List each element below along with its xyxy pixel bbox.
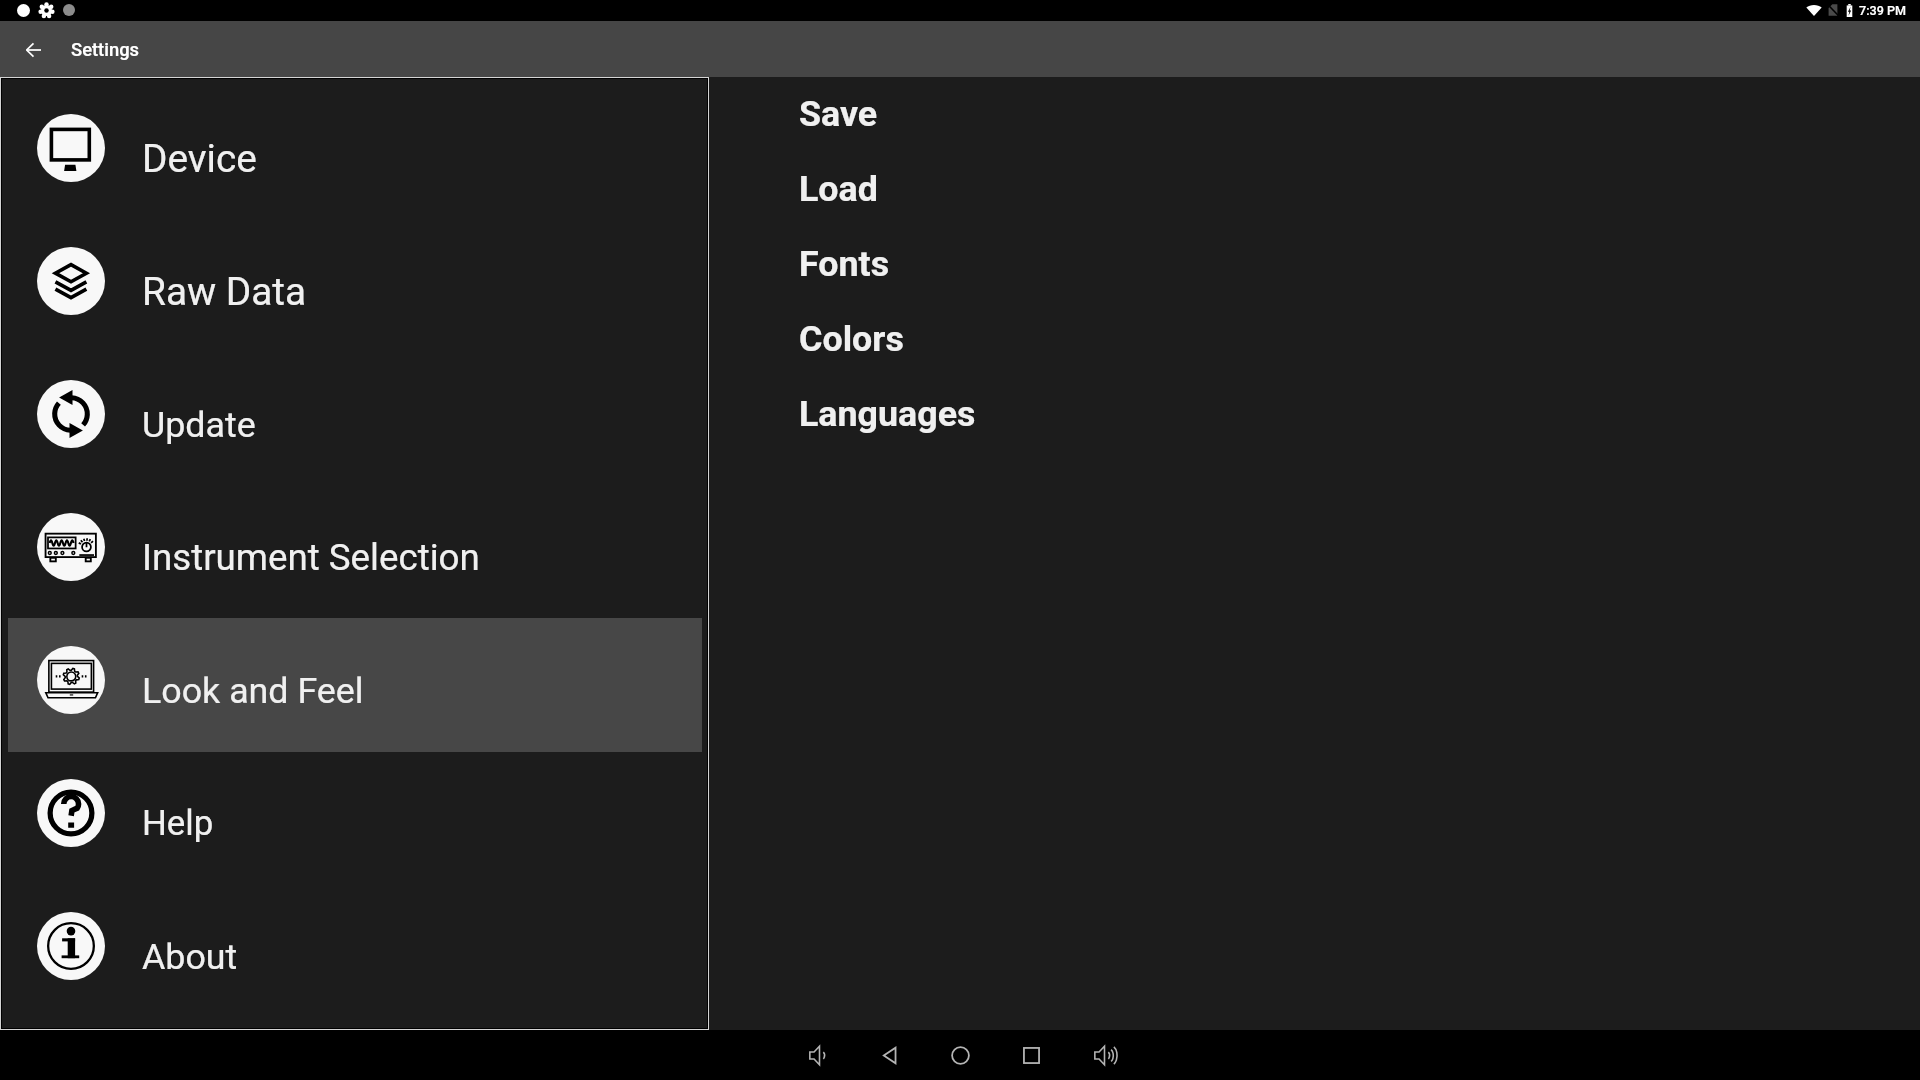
button[interactable] [800,385,1030,441]
button[interactable]: Recents [1008,1032,1054,1078]
staticText: Update [142,404,256,446]
button[interactable]: Volume up [1081,1032,1127,1078]
staticText: Look and Feel [142,670,364,712]
button[interactable]: Back [13,30,53,70]
button[interactable] [8,485,702,619]
staticText: Save [799,93,878,135]
button[interactable] [800,235,1030,291]
button[interactable]: Home [937,1032,983,1078]
staticText: Load [799,168,878,210]
button[interactable] [8,352,702,486]
staticText: Settings [71,39,140,61]
button[interactable] [8,86,702,220]
button[interactable]: Volume down [796,1032,842,1078]
button[interactable] [8,618,702,752]
button[interactable] [800,85,1030,141]
button[interactable]: Back [867,1032,913,1078]
staticText: Device [142,136,257,181]
button[interactable] [8,751,702,885]
staticText: Help [142,803,214,844]
staticText: Languages [799,393,976,435]
staticText: Fonts [799,243,890,285]
staticText: Colors [799,318,904,360]
staticText: 7:39 PM [1859,3,1906,18]
staticText: Instrument Selection [142,536,480,579]
staticText: About [142,936,238,978]
staticText: Raw Data [142,269,307,314]
button[interactable] [8,884,702,1018]
button[interactable] [800,310,1030,366]
button[interactable] [8,219,702,353]
button[interactable] [800,160,1030,216]
